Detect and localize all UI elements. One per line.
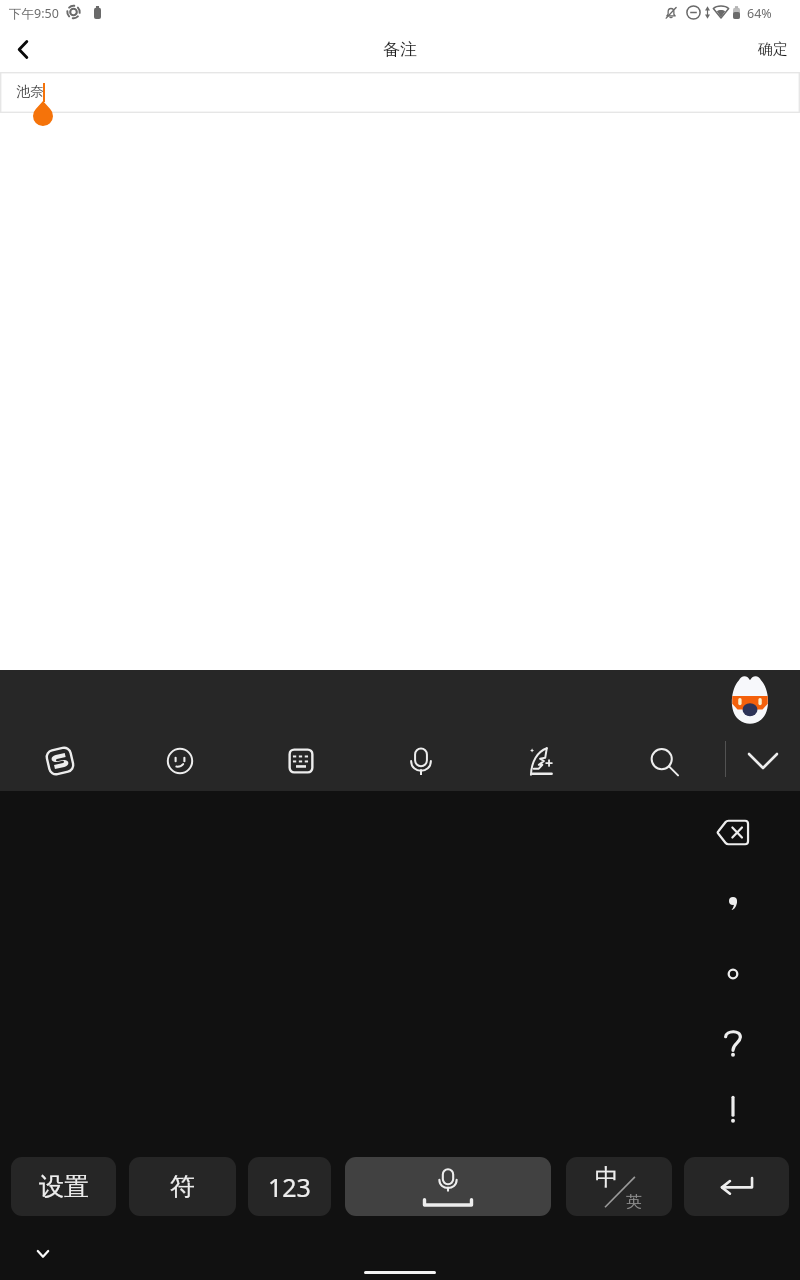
button[interactable]: Voice input: [393, 731, 449, 791]
button[interactable]: 符: [129, 1157, 236, 1216]
button[interactable]: Hide keyboard: [735, 731, 791, 791]
button[interactable]: Enter: [684, 1157, 789, 1216]
button[interactable]: Collapse keyboard: [30, 1241, 56, 1267]
button[interactable]: Exclamation mark: [697, 1075, 769, 1143]
staticText: 设置: [39, 1171, 89, 1202]
button[interactable]: Comma: [697, 869, 769, 937]
button[interactable]: Emoji: [152, 731, 208, 791]
staticText: 确定: [758, 40, 788, 59]
button[interactable]: Space: [345, 1157, 551, 1216]
button[interactable]: 设置: [11, 1157, 116, 1216]
button[interactable]: 确定: [758, 26, 788, 72]
button[interactable]: Chinese English toggle: [566, 1157, 672, 1216]
staticText: 备注: [383, 39, 417, 60]
button[interactable]: 123: [248, 1157, 331, 1216]
button[interactable]: Backspace: [697, 798, 769, 866]
staticText: 中: [595, 1163, 618, 1192]
staticText: 64%: [747, 5, 772, 22]
button[interactable]: Handwriting: [514, 731, 570, 791]
staticText: 符: [170, 1171, 195, 1202]
button[interactable]: Sogou assistant: [726, 673, 774, 725]
button[interactable]: Search: [635, 731, 691, 791]
button[interactable]: Question mark: [697, 1009, 769, 1077]
button[interactable]: Period: [697, 940, 769, 1008]
button[interactable]: Back: [0, 26, 46, 72]
staticText: 英: [626, 1192, 642, 1212]
button[interactable]: Keyboard layout: [273, 731, 329, 791]
staticText: 123: [268, 1170, 311, 1204]
button[interactable]: Sogou input: [32, 731, 88, 791]
staticText: 池奈: [16, 83, 44, 101]
staticText: 下午9:50: [9, 5, 59, 22]
